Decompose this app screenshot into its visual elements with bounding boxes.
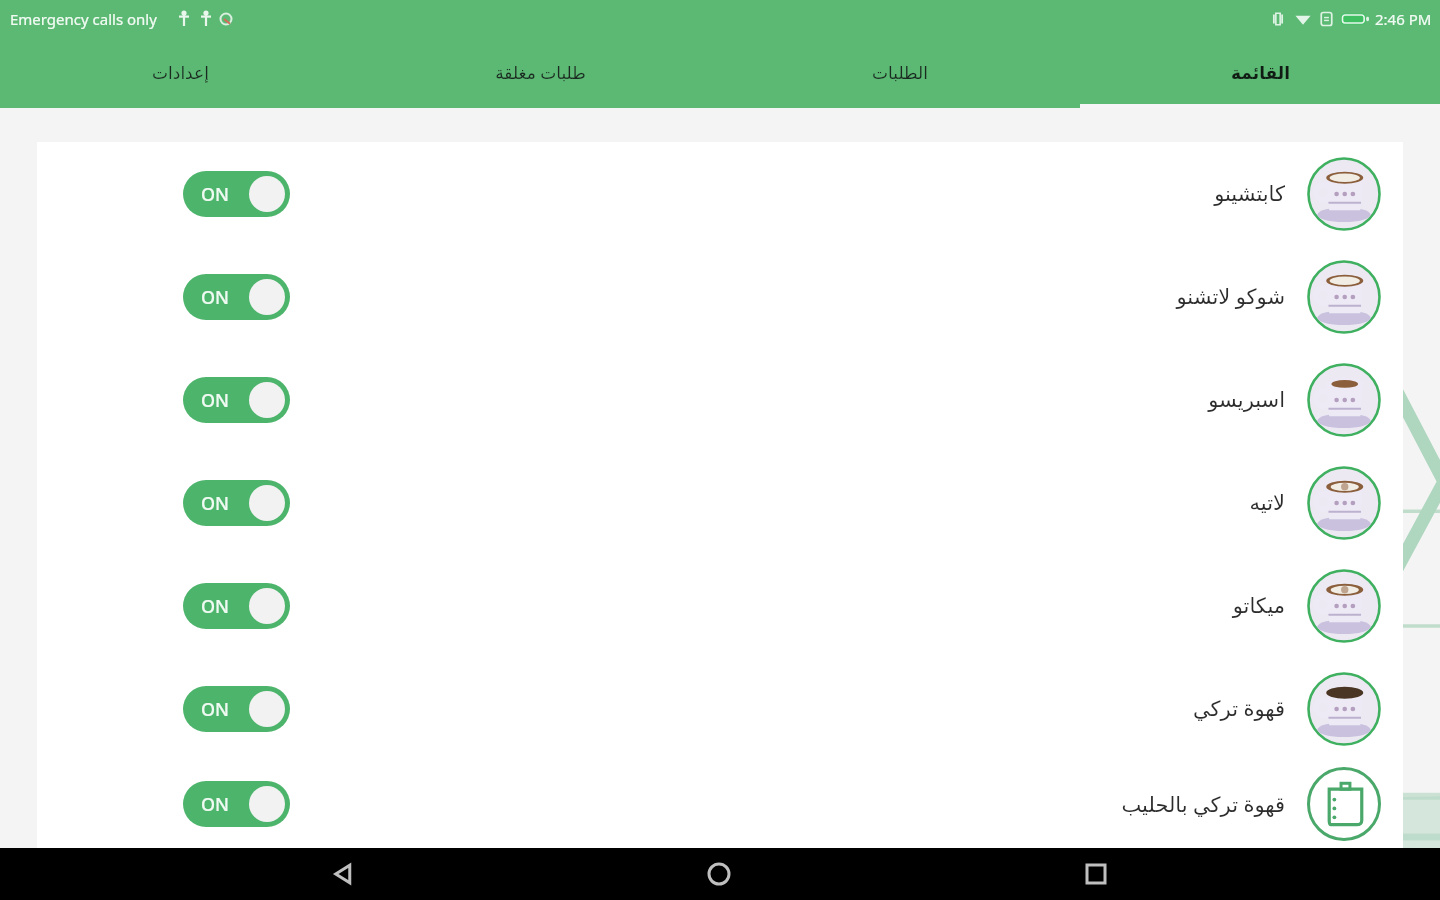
other: Coffee (1307, 157, 1381, 231)
staticText: الطلبات (872, 63, 928, 83)
staticText: ON (201, 182, 230, 207)
staticText: 2:46 PM (1375, 9, 1432, 29)
staticText: ON (201, 491, 230, 516)
other: Coffee (1307, 767, 1381, 841)
button[interactable]: Toggle on (37, 245, 1403, 348)
button[interactable]: طلبات مغلقة (360, 37, 720, 108)
staticText: Emergency calls only (10, 9, 157, 29)
staticText: اسبريسو (1208, 388, 1285, 412)
button[interactable]: القائمة (1080, 37, 1440, 108)
other: Coffee (1307, 260, 1381, 334)
button[interactable]: Toggle on (37, 142, 1403, 245)
button[interactable]: إعدادات (0, 37, 360, 108)
button[interactable]: Toggle on (37, 451, 1403, 554)
staticText: ON (201, 792, 230, 817)
button[interactable]: Toggle on (183, 480, 290, 526)
button[interactable]: Toggle on (37, 348, 1403, 451)
staticText: كابتشينو (1214, 182, 1285, 206)
other: Coffee (1307, 363, 1381, 437)
button[interactable]: Toggle on (183, 781, 290, 827)
button[interactable]: Toggle on (183, 686, 290, 732)
staticText: طلبات مغلقة (495, 61, 586, 84)
staticText: قهوة تركي بالحليب (1121, 790, 1285, 819)
staticText: لاتيه (1249, 491, 1285, 515)
button[interactable]: Toggle on (183, 274, 290, 320)
staticText: القائمة (1231, 63, 1290, 83)
staticText: إعدادات (152, 63, 209, 83)
staticText: ON (201, 388, 230, 413)
button[interactable]: Toggle on (37, 760, 1403, 848)
button[interactable]: Toggle on (37, 554, 1403, 657)
button[interactable]: Recents (1063, 848, 1129, 900)
staticText: ON (201, 697, 230, 722)
staticText: قهوة تركي (1193, 694, 1285, 723)
staticText: ON (201, 594, 230, 619)
staticText: ON (201, 285, 230, 310)
button[interactable]: Back (310, 848, 376, 900)
staticText: ميكاتو (1232, 594, 1285, 618)
button[interactable]: Toggle on (183, 377, 290, 423)
button[interactable]: الطلبات (720, 37, 1080, 108)
other: Coffee (1307, 569, 1381, 643)
button[interactable]: Toggle on (37, 657, 1403, 760)
button[interactable]: Toggle on (183, 171, 290, 217)
button[interactable]: Home (686, 848, 752, 900)
other: Coffee (1307, 466, 1381, 540)
other: Coffee (1307, 672, 1381, 746)
button[interactable]: Toggle on (183, 583, 290, 629)
staticText: شوكو لاتشنو (1176, 282, 1285, 311)
